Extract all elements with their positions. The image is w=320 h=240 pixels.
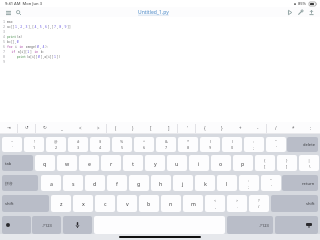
staticText: u xyxy=(175,160,179,167)
button[interactable]: < xyxy=(205,195,225,212)
button[interactable]: y xyxy=(145,155,165,171)
button[interactable]: - xyxy=(249,122,267,133)
button[interactable]: ( xyxy=(200,137,220,152)
button[interactable]: < xyxy=(71,122,89,133)
button[interactable]: x xyxy=(73,195,93,212)
button[interactable]: b xyxy=(139,195,159,212)
button[interactable]: q xyxy=(35,155,55,171)
staticText: v xyxy=(126,200,129,207)
button[interactable]: } xyxy=(213,122,231,133)
button[interactable]: shift xyxy=(271,195,318,212)
staticText: 7 xyxy=(54,24,57,29)
button[interactable]: ] xyxy=(160,122,178,133)
button[interactable]: > xyxy=(89,122,107,133)
button[interactable]: n xyxy=(161,195,181,212)
button[interactable]: delete xyxy=(287,137,318,152)
button[interactable]: v xyxy=(117,195,137,212)
button[interactable]: ⇥ xyxy=(0,122,18,133)
button[interactable]: : xyxy=(244,137,264,152)
button[interactable]: e xyxy=(79,155,99,171)
button[interactable]: * xyxy=(284,122,302,133)
button[interactable]: * xyxy=(178,137,198,152)
staticText: f xyxy=(116,180,118,187)
button[interactable]: ? xyxy=(249,195,269,212)
staticText: in xyxy=(19,44,24,49)
button[interactable]: l xyxy=(217,175,237,191)
button[interactable]: ' xyxy=(178,122,196,133)
button[interactable]: r xyxy=(101,155,121,171)
button[interactable]: Untitled_1.py xyxy=(136,9,171,16)
staticText: - xyxy=(257,125,259,131)
button[interactable]: Search xyxy=(13,8,23,17)
button[interactable]: Settings xyxy=(295,8,306,17)
button[interactable]: c xyxy=(95,195,115,212)
staticText: 8 xyxy=(0,54,5,59)
button[interactable]: tab xyxy=(2,155,33,171)
button[interactable]: " xyxy=(261,175,281,191)
staticText: ' xyxy=(276,145,277,150)
staticText: 1 xyxy=(54,54,57,59)
button[interactable]: ! xyxy=(24,137,44,152)
button[interactable]: z xyxy=(51,195,71,212)
button[interactable]: u xyxy=(167,155,187,171)
staticText: < xyxy=(214,198,217,203)
button[interactable]: Voice input xyxy=(63,216,92,234)
button[interactable]: Run xyxy=(284,8,295,17)
button[interactable]: Share xyxy=(306,8,317,17)
staticText: ' xyxy=(271,184,272,189)
button[interactable]: w xyxy=(57,155,77,171)
button[interactable]: shift xyxy=(2,195,49,212)
button[interactable]: ) xyxy=(222,137,242,152)
staticText: shift xyxy=(5,201,14,206)
button[interactable]: .?123 xyxy=(227,216,273,234)
button[interactable]: { xyxy=(196,122,214,133)
button[interactable]: d xyxy=(85,175,105,191)
button[interactable]: .?123 xyxy=(32,216,61,234)
button[interactable]: ( xyxy=(107,122,125,133)
button[interactable]: Hide keyboard xyxy=(275,216,318,234)
button[interactable]: Change keyboard xyxy=(2,216,31,234)
button[interactable]: return xyxy=(282,175,318,191)
button[interactable]: o xyxy=(211,155,231,171)
button[interactable]: 拼音 xyxy=(2,175,38,191)
button[interactable]: $ xyxy=(90,137,110,152)
button[interactable]: a xyxy=(41,175,61,191)
button[interactable]: > xyxy=(227,195,247,212)
staticText: 5 xyxy=(121,145,124,150)
button[interactable]: ~ xyxy=(2,137,22,152)
button[interactable]: m xyxy=(183,195,203,212)
button[interactable]: " xyxy=(266,137,286,152)
button[interactable]: t xyxy=(123,155,143,171)
button[interactable]: # xyxy=(68,137,88,152)
button[interactable]: : xyxy=(302,122,320,133)
button[interactable]: s xyxy=(63,175,83,191)
button[interactable]: } xyxy=(277,155,297,171)
staticText: ]] xyxy=(67,24,72,29)
button[interactable]: & xyxy=(156,137,176,152)
button[interactable]: _ xyxy=(53,122,71,133)
button[interactable]: { xyxy=(255,155,275,171)
button[interactable]: f xyxy=(107,175,127,191)
button[interactable]: i xyxy=(189,155,209,171)
button[interactable]: : xyxy=(239,175,259,191)
button[interactable]: % xyxy=(112,137,132,152)
button[interactable]: ↻ xyxy=(36,122,54,133)
button[interactable]: p xyxy=(233,155,253,171)
button[interactable]: j xyxy=(173,175,193,191)
staticText: < xyxy=(79,125,82,131)
staticText: { xyxy=(264,158,266,163)
button[interactable]: ↺ xyxy=(18,122,36,133)
button[interactable]: Menu xyxy=(3,8,13,17)
button[interactable]: [ xyxy=(142,122,160,133)
staticText: ; xyxy=(253,145,255,150)
button[interactable]: ) xyxy=(124,122,142,133)
button[interactable]: / xyxy=(267,122,285,133)
button[interactable]: @ xyxy=(46,137,66,152)
button[interactable]: g xyxy=(129,175,149,191)
button[interactable]: ^ xyxy=(134,137,154,152)
button[interactable]: | xyxy=(299,155,319,171)
button[interactable]: + xyxy=(231,122,249,133)
button[interactable]: k xyxy=(195,175,215,191)
button[interactable]: h xyxy=(151,175,171,191)
